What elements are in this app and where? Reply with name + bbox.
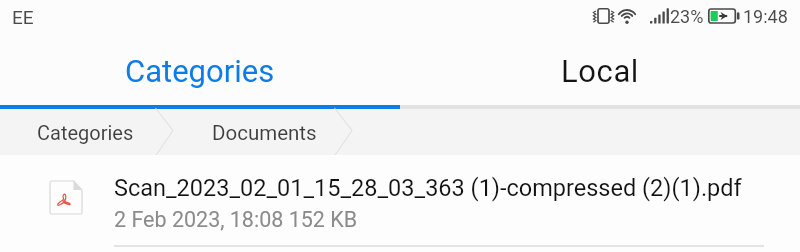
staticText: Local [561, 53, 640, 89]
staticText: 23% [670, 6, 704, 27]
staticText: Scan_2023_02_01_15_28_03_363 (1)-compres… [114, 174, 742, 202]
staticText: Documents [212, 121, 317, 145]
staticText: EE [12, 6, 34, 28]
button[interactable]: Local [400, 0, 800, 109]
button[interactable]: PDF file [0, 155, 800, 252]
staticText: Categories [125, 53, 275, 89]
staticText: Categories [37, 121, 134, 144]
other: PDF file [49, 180, 83, 215]
staticText: 2 Feb 2023, 18:08 152 KB [114, 207, 358, 232]
button[interactable]: Documents [212, 121, 317, 145]
button[interactable]: Categories [37, 121, 134, 144]
staticText: 19:48 [743, 6, 788, 27]
button[interactable]: Categories [0, 0, 400, 109]
